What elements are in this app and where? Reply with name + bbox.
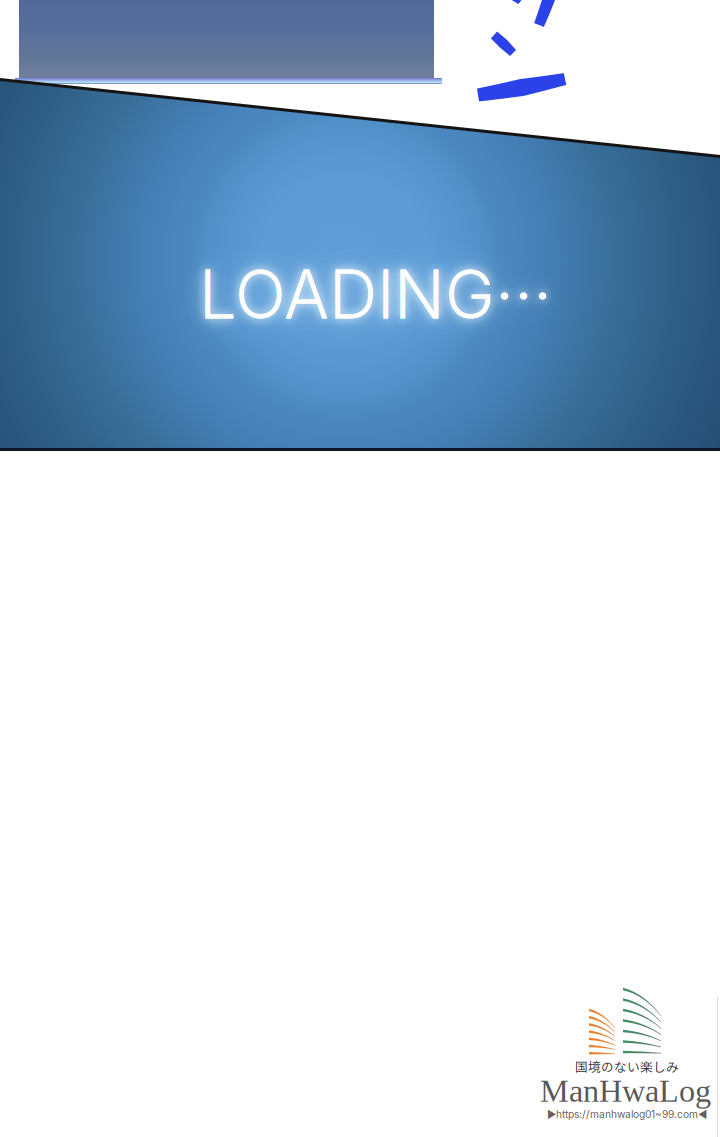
- staticText: LOADING···: [199, 254, 552, 335]
- staticText: LOADING···: [199, 254, 552, 335]
- button[interactable]: ▶https://manhwalog01~99.com◀: [547, 1108, 707, 1120]
- staticText: LOADING···: [199, 254, 552, 335]
- staticText: 国境のない楽しみ: [575, 1057, 679, 1075]
- staticText: ▶https://manhwalog01~99.com◀: [547, 1108, 707, 1120]
- staticText: ManHwaLog: [540, 1073, 711, 1109]
